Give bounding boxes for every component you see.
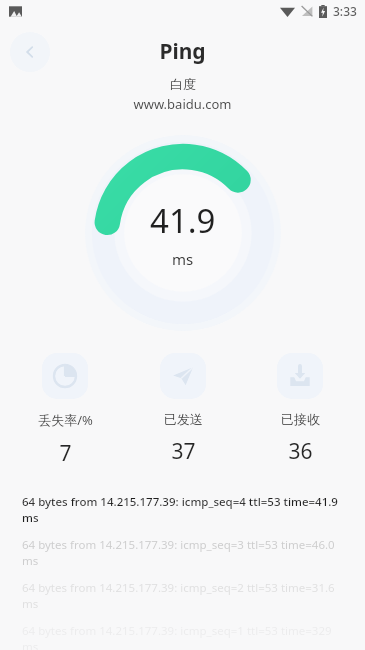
- button[interactable]: 已接收: [248, 353, 352, 466]
- button[interactable]: 丢失率/%: [13, 353, 117, 468]
- staticText: ms: [172, 249, 194, 269]
- staticText: 64 bytes from 14.215.177.39: icmp_seq=2 …: [22, 580, 349, 612]
- staticText: 已发送: [164, 411, 203, 427]
- staticText: 36: [288, 437, 313, 466]
- staticText: 37: [171, 437, 196, 466]
- staticText: 64 bytes from 14.215.177.39: icmp_seq=3 …: [22, 537, 349, 569]
- staticText: Ping: [159, 37, 206, 66]
- staticText: www.baidu.com: [133, 95, 232, 113]
- staticText: 3:33: [333, 3, 357, 19]
- button[interactable]: Back: [10, 32, 50, 72]
- staticText: 白度: [170, 76, 196, 92]
- staticText: 7: [59, 439, 72, 468]
- staticText: 64 bytes from 14.215.177.39: icmp_seq=4 …: [22, 494, 349, 526]
- staticText: 丢失率/%: [38, 411, 93, 429]
- staticText: 已接收: [281, 411, 320, 427]
- button[interactable]: 已发送: [131, 353, 235, 466]
- staticText: 41.9: [150, 198, 216, 243]
